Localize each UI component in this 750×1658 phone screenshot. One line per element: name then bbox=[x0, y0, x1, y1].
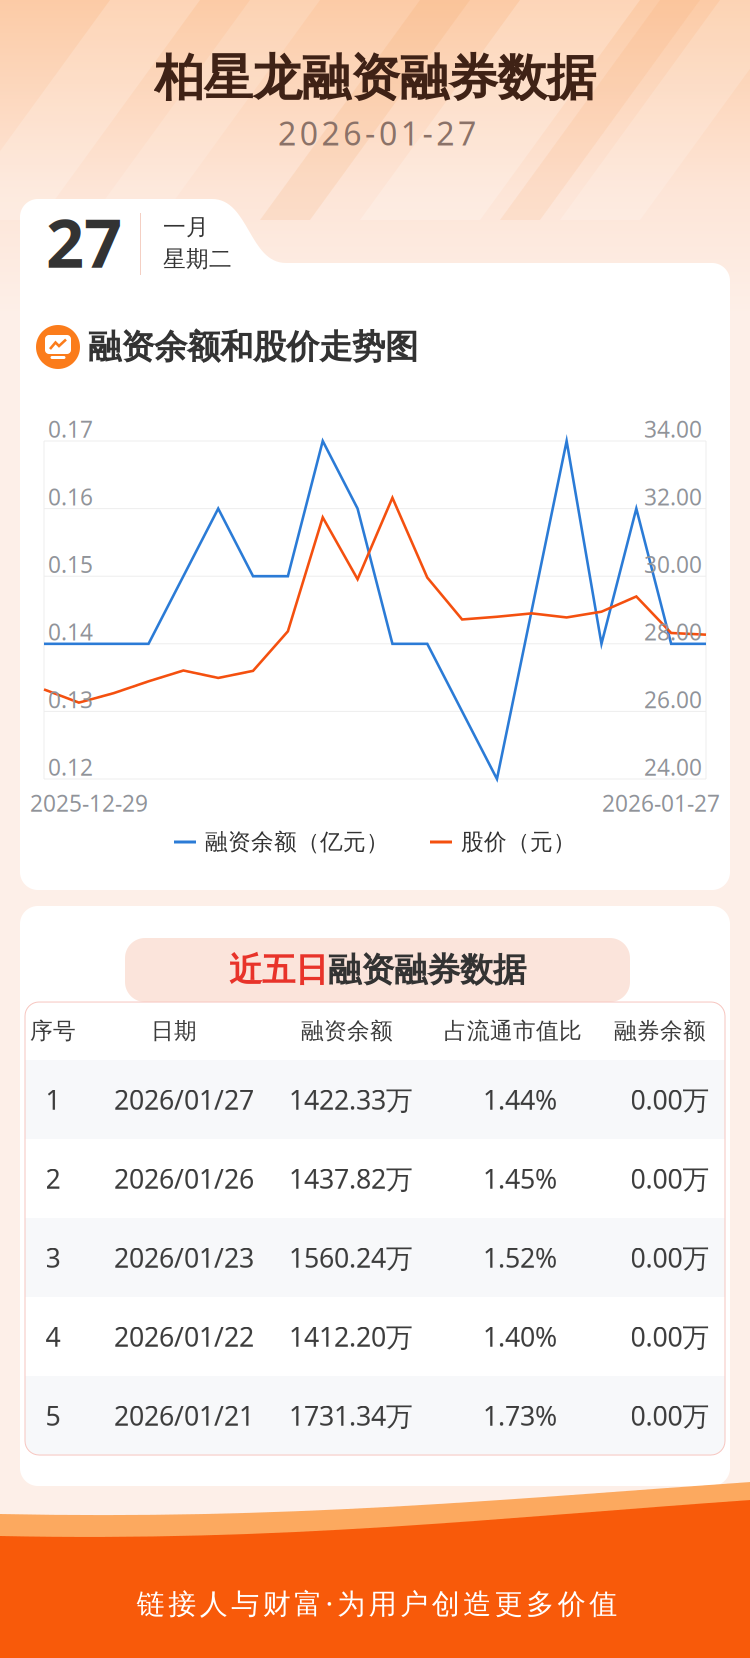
staticText: 近五日 bbox=[229, 949, 328, 990]
staticText: 0.12 bbox=[48, 752, 93, 782]
staticText: 链接人与财富·为用户创造更多价值 bbox=[137, 1584, 617, 1622]
staticText: 占流通市值比 bbox=[444, 1017, 582, 1045]
staticText: 融券余额 bbox=[614, 1017, 706, 1045]
staticText: 2026/01/21 bbox=[114, 1398, 254, 1433]
staticText: 24.00 bbox=[644, 752, 702, 782]
staticText: 28.00 bbox=[644, 617, 702, 647]
staticText: 星期二 bbox=[163, 245, 232, 273]
staticText: 0.17 bbox=[48, 414, 93, 444]
staticText: 2026-01-27 bbox=[278, 112, 476, 154]
staticText: 0.00万 bbox=[630, 1319, 709, 1354]
staticText: 1.73% bbox=[483, 1398, 557, 1433]
staticText: 2026/01/27 bbox=[114, 1082, 254, 1117]
staticText: 序号 bbox=[30, 1017, 76, 1045]
staticText: 4 bbox=[45, 1319, 60, 1354]
staticText: 1.52% bbox=[483, 1240, 557, 1275]
staticText: 融资余额 bbox=[301, 1017, 393, 1045]
staticText: 0.16 bbox=[48, 481, 93, 512]
staticText: 2026/01/26 bbox=[114, 1161, 254, 1196]
staticText: 0.14 bbox=[48, 617, 93, 647]
staticText: 1 bbox=[45, 1082, 60, 1117]
staticText: 柏星龙融资融券数据 bbox=[154, 48, 595, 108]
staticText: 1.44% bbox=[483, 1082, 557, 1117]
staticText: 3 bbox=[45, 1240, 60, 1275]
staticText: 5 bbox=[45, 1398, 60, 1433]
staticText: 0.00万 bbox=[630, 1082, 709, 1117]
staticText: 融资余额（亿元） bbox=[205, 828, 389, 856]
staticText: 股价（元） bbox=[461, 828, 576, 856]
staticText: 2026/01/22 bbox=[114, 1319, 254, 1354]
staticText: 1422.33万 bbox=[289, 1082, 413, 1117]
staticText: 0.00万 bbox=[630, 1161, 709, 1196]
staticText: 0.13 bbox=[48, 684, 93, 714]
staticText: 30.00 bbox=[644, 549, 702, 579]
staticText: 1437.82万 bbox=[289, 1161, 413, 1196]
staticText: 0.15 bbox=[48, 549, 93, 579]
staticText: 1731.34万 bbox=[289, 1398, 413, 1433]
staticText: 日期 bbox=[151, 1017, 197, 1045]
staticText: 2 bbox=[45, 1161, 60, 1196]
staticText: 32.00 bbox=[644, 481, 702, 512]
staticText: 2025-12-29 bbox=[30, 788, 148, 818]
staticText: 1560.24万 bbox=[289, 1240, 413, 1275]
staticText: 1412.20万 bbox=[289, 1319, 413, 1354]
staticText: 26.00 bbox=[644, 684, 702, 714]
staticText: 27 bbox=[46, 198, 122, 286]
staticText: 一月 bbox=[163, 213, 209, 241]
staticText: 融资余额和股价走势图 bbox=[88, 326, 418, 367]
staticText: 1.45% bbox=[483, 1161, 557, 1196]
staticText: 1.40% bbox=[483, 1319, 557, 1354]
staticText: 0.00万 bbox=[630, 1240, 709, 1275]
staticText: 0.00万 bbox=[630, 1398, 709, 1433]
staticText: 34.00 bbox=[644, 414, 702, 444]
staticText: 2026/01/23 bbox=[114, 1240, 254, 1275]
staticText: 2026-01-27 bbox=[602, 788, 720, 818]
staticText: 融资融券数据 bbox=[328, 949, 526, 990]
